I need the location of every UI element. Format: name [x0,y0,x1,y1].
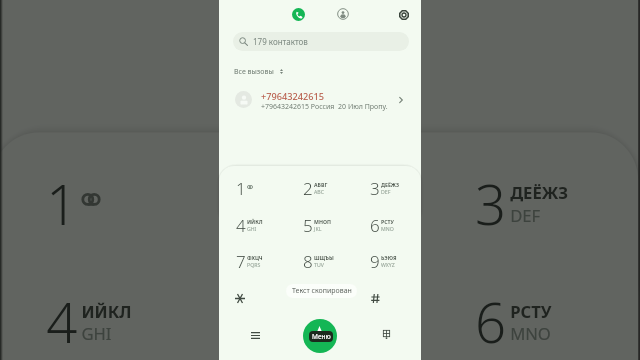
button[interactable]: Все вызовы [231,64,286,79]
staticText: 6 [370,214,380,237]
button[interactable]: Keypad [372,320,400,348]
button[interactable]: 7 [227,246,285,276]
staticText: DEF [510,203,542,225]
staticText: JKL [314,225,322,232]
staticText: GHI [81,321,113,343]
staticText: WXYZ [381,261,395,268]
staticText: АБВГ [296,180,341,203]
staticText: 179 контактов [253,36,308,47]
staticText: РСТУ [510,299,552,321]
button[interactable]: Call details [391,90,411,110]
staticText: DEF [381,188,391,195]
staticText: АБВГ [314,181,328,188]
staticText: MNO [510,321,552,343]
staticText: ДЕЁЖЗ [381,181,400,188]
button[interactable]: 5 [294,210,352,240]
staticText: ЬЭЮЯ [381,254,397,261]
staticText: +79643242615 Россия 20 Июл Пропу. [261,102,388,112]
button[interactable]: Menu [241,321,269,349]
staticText: 4 [236,214,246,237]
staticText: 8 [303,250,313,273]
button[interactable]: Call [303,319,337,353]
staticText: 3 [475,167,507,241]
staticText: ИЙКЛ [81,299,133,321]
staticText: ИЙКЛ [247,218,263,225]
staticText: GHI [247,225,257,232]
button[interactable]: Settings [393,4,414,25]
staticText: MNO [381,225,394,232]
button[interactable]: 9 [361,246,419,276]
staticText: +79643242615 [261,90,325,103]
button[interactable]: 1 [17,155,203,251]
button[interactable]: 4 [227,210,285,240]
staticText: JKL [296,321,321,343]
staticText: МНОП [296,299,350,321]
button[interactable]: Recent calls [288,4,309,25]
staticText: TUV [314,261,324,268]
staticText: Текст скопирован [292,286,352,296]
button[interactable]: 2 [294,173,352,203]
staticText: ФХЦЧ [247,254,263,261]
button[interactable]: Contacts [332,3,353,24]
button[interactable]: Star [225,283,255,313]
staticText: ABC [314,188,324,195]
staticText: 4 [46,286,78,359]
staticText: 9 [370,250,380,273]
staticText: 2 [261,167,293,241]
staticText: МНОП [314,218,331,225]
button[interactable]: Hash [360,283,390,313]
staticText: Меню [312,332,331,341]
button[interactable]: 6 [446,273,632,360]
staticText: ДЕЁЖЗ [510,180,571,203]
staticText: Все вызовы [234,67,274,77]
button[interactable]: 179 контактов [233,32,409,51]
staticText: ABC [296,203,328,225]
button[interactable]: 3 [361,173,419,203]
staticText: 1 [46,167,78,241]
staticText: 5 [303,214,313,237]
staticText: 2 [303,177,313,200]
staticText: 6 [475,286,507,359]
button[interactable]: 3 [446,155,632,251]
button[interactable]: 5 [232,273,417,360]
staticText: PQRS [247,261,261,268]
button[interactable]: 6 [361,210,419,240]
button[interactable]: 4 [17,273,203,360]
staticText: РСТУ [381,218,394,225]
button[interactable]: 2 [232,155,417,251]
button[interactable]: 8 [294,246,352,276]
staticText: 3 [370,177,380,200]
staticText: 1 [236,177,246,200]
staticText: ШЩЪЫ [314,254,334,261]
button[interactable]: 1 [227,173,285,203]
button[interactable]: +79643242615 [219,82,421,118]
staticText: 7 [236,250,246,273]
